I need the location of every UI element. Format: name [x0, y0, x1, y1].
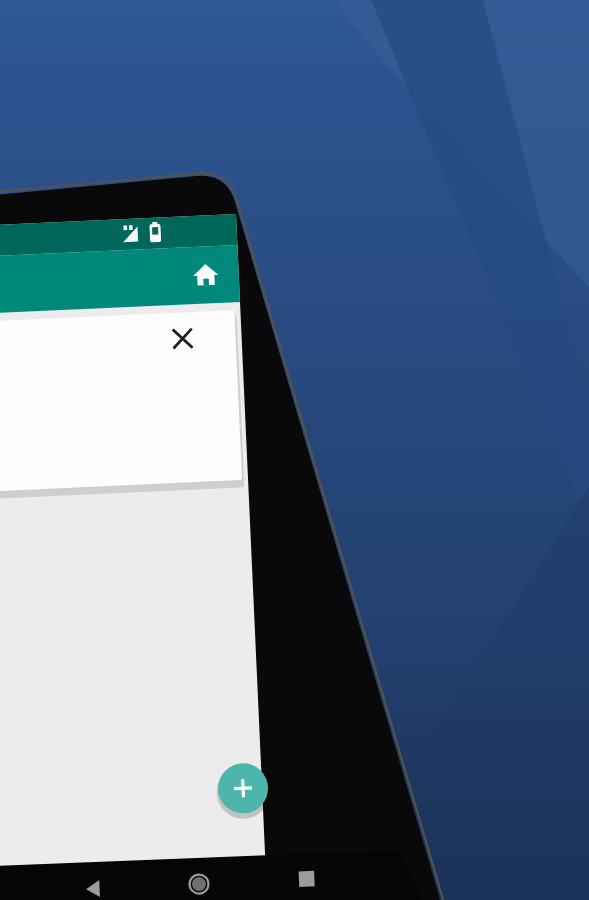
- button[interactable]: Recent apps: [282, 862, 326, 900]
- button[interactable]: Back: [70, 862, 114, 900]
- button[interactable]: Home: [190, 245, 230, 285]
- button[interactable]: Close: [158, 308, 200, 350]
- button[interactable]: Home: [176, 862, 220, 900]
